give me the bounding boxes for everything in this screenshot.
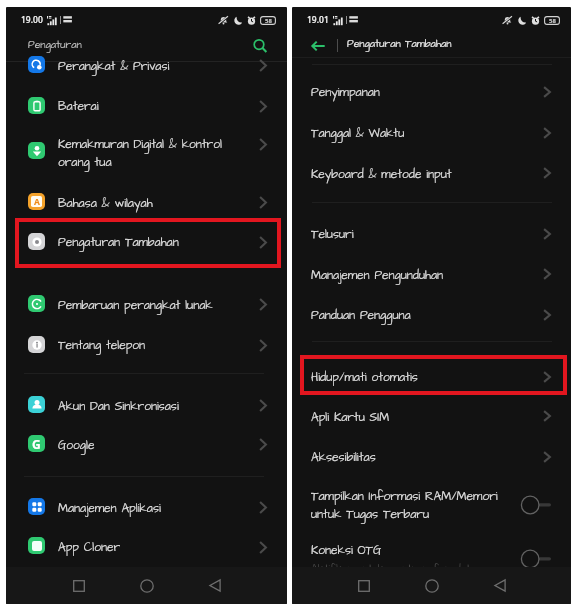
button[interactable] bbox=[6, 183, 287, 223]
button[interactable] bbox=[292, 153, 571, 193]
button[interactable] bbox=[6, 487, 287, 527]
staticText: Keyboard & metode input bbox=[311, 166, 452, 183]
button[interactable] bbox=[292, 437, 571, 477]
staticText: Google bbox=[58, 437, 95, 454]
staticText: Aktifkan untuk mentransfer data bbox=[311, 562, 476, 577]
button[interactable] bbox=[292, 72, 571, 112]
staticText: Manajemen Aplikasi bbox=[58, 500, 161, 517]
staticText: App Cloner bbox=[58, 539, 121, 556]
button[interactable]: Home bbox=[412, 567, 452, 604]
button[interactable] bbox=[292, 214, 571, 254]
button[interactable] bbox=[6, 46, 287, 86]
staticText: Pembaruan perangkat lunak bbox=[58, 297, 213, 314]
button[interactable] bbox=[292, 254, 571, 294]
staticText: Akun Dan Sinkronisasi bbox=[58, 398, 179, 415]
button[interactable] bbox=[292, 396, 571, 436]
button[interactable] bbox=[6, 222, 287, 262]
staticText: Kemakmuran Digital & kontrol orang tua bbox=[58, 136, 222, 170]
staticText: 58 bbox=[549, 17, 556, 25]
button[interactable] bbox=[6, 124, 287, 164]
button[interactable]: Back bbox=[480, 567, 520, 604]
button[interactable] bbox=[292, 536, 571, 582]
button[interactable] bbox=[292, 357, 571, 397]
staticText: Pengaturan Tambahan bbox=[347, 37, 452, 51]
staticText: 19.01 bbox=[307, 14, 329, 26]
button[interactable]: Back bbox=[195, 567, 235, 604]
staticText: 58 bbox=[265, 17, 272, 25]
staticText: Koneksi OTG bbox=[311, 542, 382, 559]
staticText: Hidup/mati otomatis bbox=[311, 369, 418, 386]
staticText: Panduan Pengguna bbox=[311, 307, 411, 324]
staticText: Perangkat & Privasi bbox=[58, 58, 170, 75]
button[interactable] bbox=[292, 482, 571, 528]
button[interactable] bbox=[292, 295, 571, 335]
button[interactable]: Home bbox=[127, 567, 167, 604]
button[interactable] bbox=[6, 424, 287, 464]
staticText: Penyimpanan bbox=[311, 84, 380, 101]
button[interactable] bbox=[6, 86, 287, 126]
button[interactable] bbox=[292, 113, 571, 153]
staticText: 19.00 bbox=[21, 14, 43, 26]
button[interactable]: Recents bbox=[59, 567, 99, 604]
button[interactable] bbox=[6, 385, 287, 425]
staticText: Pengaturan bbox=[28, 38, 82, 52]
staticText: A bbox=[34, 196, 40, 207]
staticText: Bahasa & wilayah bbox=[58, 195, 153, 212]
staticText: Pengaturan Tambahan bbox=[58, 234, 179, 251]
staticText: Baterai bbox=[58, 98, 99, 115]
staticText: Telusuri bbox=[311, 226, 354, 243]
button[interactable]: Back bbox=[306, 34, 330, 58]
staticText: Manajemen Pengunduhan bbox=[311, 267, 444, 284]
staticText: Apli Kartu SIM bbox=[311, 409, 390, 426]
button[interactable] bbox=[6, 527, 287, 567]
button[interactable] bbox=[6, 285, 287, 325]
staticText: Tanggal & Waktu bbox=[311, 125, 405, 142]
staticText: Tampilkan Informasi RAM/Memori untuk Tug… bbox=[311, 488, 498, 522]
button[interactable]: Search bbox=[250, 36, 272, 58]
staticText: G bbox=[32, 436, 41, 452]
button[interactable] bbox=[6, 325, 287, 365]
staticText: Tentang telepon bbox=[58, 337, 146, 354]
button[interactable]: Recents bbox=[344, 567, 384, 604]
staticText: Aksesibilitas bbox=[311, 449, 376, 466]
